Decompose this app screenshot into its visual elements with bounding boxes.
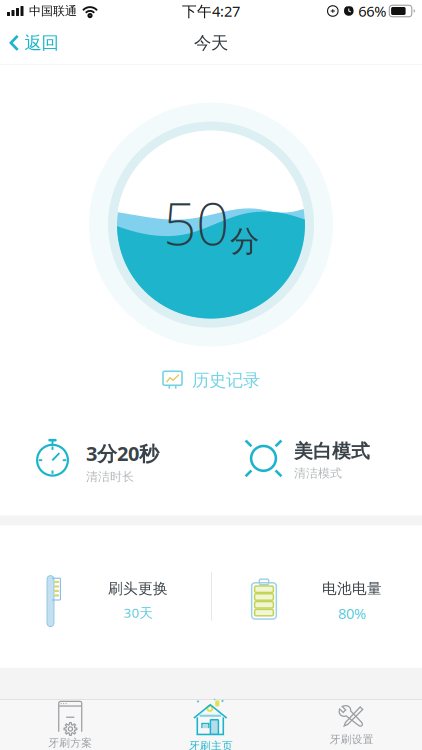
staticText: 66%	[358, 1, 386, 21]
button[interactable]: 牙刷设置	[281, 700, 422, 750]
staticText: 电池电量	[322, 580, 382, 598]
staticText: 3分20秒	[86, 440, 159, 466]
staticText: 50	[163, 184, 229, 261]
staticText: 牙刷方案	[48, 736, 92, 749]
staticText: 今天	[194, 32, 228, 54]
staticText: 牙刷主页	[189, 739, 233, 750]
staticText: 30天	[123, 604, 152, 621]
staticText: 刷头更换	[108, 580, 168, 598]
staticText: 清洁时长	[86, 469, 134, 484]
staticText: 80%	[338, 604, 366, 623]
staticText: 历史记录	[192, 370, 260, 391]
button[interactable]: 历史记录	[150, 363, 272, 398]
button[interactable]: 牙刷主页	[141, 700, 281, 750]
button[interactable]: 返回	[0, 22, 68, 64]
staticText: 牙刷设置	[330, 733, 374, 746]
staticText: 清洁模式	[294, 466, 342, 480]
staticText: 下午4:27	[182, 1, 240, 21]
staticText: 中国联通	[29, 4, 77, 18]
button[interactable]: 牙刷方案	[0, 700, 141, 750]
staticText: 分	[230, 223, 259, 259]
staticText: 美白模式	[294, 440, 370, 463]
staticText: 返回	[24, 32, 58, 54]
